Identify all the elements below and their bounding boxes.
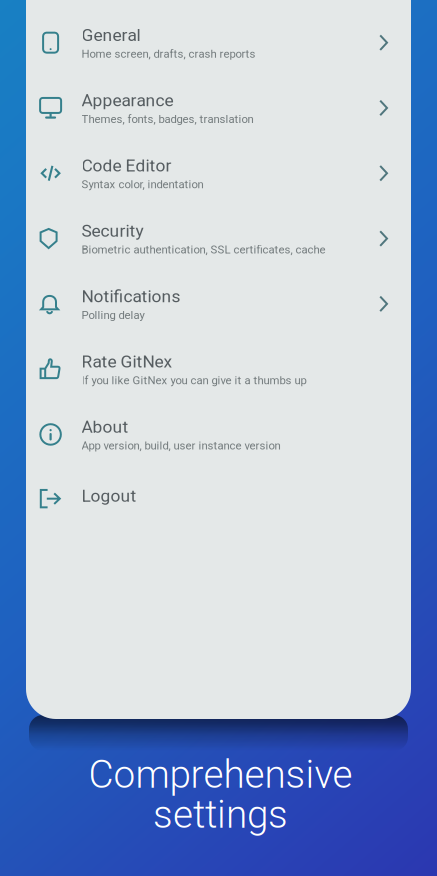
staticText: Biometric authentication, SSL certificat… [82, 243, 326, 256]
button[interactable]: Notifications [26, 271, 411, 336]
staticText: Syntax color, indentation [82, 178, 204, 191]
staticText: Themes, fonts, badges, translation [82, 112, 254, 126]
staticText: Rate GitNex [82, 351, 173, 372]
staticText: Notifications [82, 286, 181, 306]
staticText: settings [153, 792, 288, 837]
staticText: About [82, 417, 129, 437]
button[interactable]: General [26, 10, 411, 75]
button[interactable]: Code Editor [26, 141, 411, 206]
staticText: If you like GitNex you can give it a thu… [82, 374, 307, 387]
staticText: Logout [82, 486, 137, 506]
button[interactable]: About [26, 402, 411, 467]
staticText: Home screen, drafts, crash reports [82, 47, 256, 60]
staticText: Polling delay [82, 308, 145, 322]
button[interactable]: Rate GitNex [26, 336, 411, 402]
staticText: Code Editor [82, 155, 172, 176]
staticText: Security [82, 221, 144, 241]
button[interactable]: Appearance [26, 75, 411, 141]
button[interactable]: Security [26, 206, 411, 271]
button[interactable]: Logout [26, 467, 411, 532]
staticText: General [82, 25, 141, 45]
staticText: Appearance [82, 90, 174, 110]
staticText: Comprehensive [88, 752, 352, 797]
staticText: App version, build, user instance versio… [82, 439, 281, 452]
